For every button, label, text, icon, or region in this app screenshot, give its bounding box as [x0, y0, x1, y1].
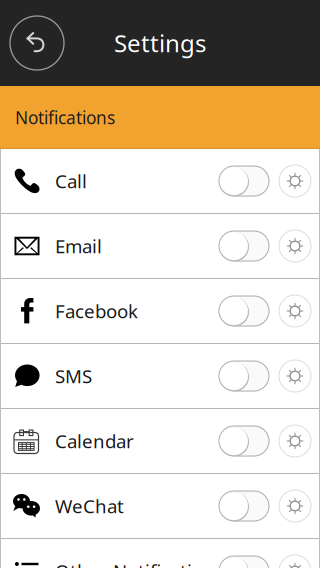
button[interactable]: Options	[279, 230, 311, 262]
button[interactable]: SMS	[0, 344, 320, 409]
button[interactable]: Facebook	[0, 279, 320, 344]
button[interactable]: Options	[279, 165, 311, 197]
staticText: Email	[55, 234, 102, 258]
button[interactable]: Options	[279, 490, 311, 522]
button[interactable]: Call	[0, 149, 320, 214]
staticText: SMS	[55, 364, 92, 388]
staticText: Facebook	[55, 299, 138, 323]
button[interactable]: Back	[10, 16, 64, 70]
button[interactable]: Options	[279, 555, 311, 568]
staticText: Calendar	[55, 429, 134, 453]
staticText: Settings	[114, 27, 206, 59]
staticText: Other Notification	[55, 559, 215, 568]
staticText: Call	[55, 169, 87, 193]
button[interactable]: Options	[279, 360, 311, 392]
button[interactable]: WeChat	[0, 474, 320, 539]
staticText: WeChat	[55, 494, 124, 518]
button[interactable]: Email	[0, 214, 320, 279]
button[interactable]: Calendar	[0, 409, 320, 474]
button[interactable]: Options	[279, 425, 311, 457]
staticText: Notifications	[15, 106, 115, 129]
button[interactable]: Other Notification	[0, 539, 320, 568]
button[interactable]: Options	[279, 295, 311, 327]
